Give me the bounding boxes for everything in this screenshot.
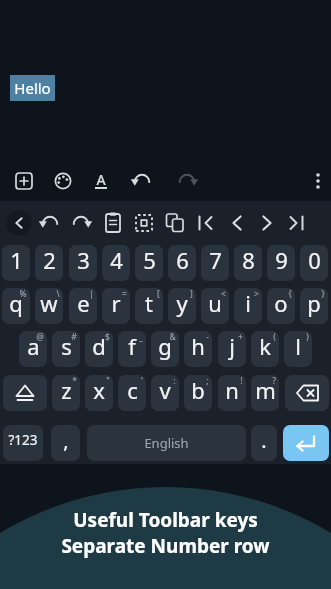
button[interactable]: , bbox=[51, 425, 80, 461]
staticText: $ bbox=[105, 331, 110, 343]
button[interactable]: 1 bbox=[2, 245, 30, 281]
button[interactable]: h bbox=[184, 331, 212, 367]
staticText: 4 bbox=[110, 245, 123, 275]
staticText: + bbox=[238, 331, 243, 343]
button[interactable]: t bbox=[135, 288, 163, 324]
button[interactable] bbox=[10, 167, 38, 195]
staticText: } bbox=[321, 288, 325, 300]
staticText: ( bbox=[273, 331, 276, 343]
staticText: [ bbox=[157, 288, 160, 300]
button[interactable]: b bbox=[184, 375, 212, 411]
staticText: @ bbox=[36, 331, 44, 343]
button[interactable]: 7 bbox=[201, 245, 229, 281]
button[interactable]: n bbox=[218, 375, 246, 411]
button[interactable] bbox=[304, 167, 331, 195]
staticText: b bbox=[191, 375, 205, 405]
button[interactable]: 9 bbox=[267, 245, 295, 281]
button[interactable]: d bbox=[85, 331, 113, 367]
button[interactable]: w bbox=[35, 288, 63, 324]
staticText: q bbox=[9, 288, 23, 318]
button[interactable]: m bbox=[251, 375, 279, 411]
button[interactable]: x bbox=[85, 375, 113, 411]
button[interactable]: f bbox=[118, 331, 146, 367]
button[interactable] bbox=[128, 167, 156, 195]
staticText: | bbox=[89, 288, 94, 300]
button[interactable]: c bbox=[118, 375, 146, 411]
button[interactable]: . bbox=[251, 425, 277, 461]
staticText: d bbox=[92, 331, 106, 361]
staticText: 5 bbox=[143, 245, 156, 275]
button[interactable]: y bbox=[168, 288, 196, 324]
button[interactable] bbox=[192, 209, 220, 237]
staticText: f bbox=[128, 331, 136, 361]
button[interactable]: 4 bbox=[102, 245, 130, 281]
staticText: % bbox=[19, 288, 27, 300]
button[interactable] bbox=[5, 209, 33, 237]
button[interactable]: 5 bbox=[135, 245, 163, 281]
button[interactable]: o bbox=[267, 288, 295, 324]
button[interactable]: p bbox=[300, 288, 328, 324]
button[interactable]: 2 bbox=[35, 245, 63, 281]
button[interactable]: 6 bbox=[168, 245, 196, 281]
staticText: : bbox=[173, 375, 176, 387]
staticText: u bbox=[208, 288, 222, 318]
staticText: y bbox=[176, 288, 188, 318]
button[interactable]: ?123 bbox=[3, 425, 43, 461]
staticText: ?123 bbox=[8, 431, 38, 449]
button[interactable] bbox=[130, 209, 158, 237]
staticText: w bbox=[40, 288, 58, 318]
button[interactable]: q bbox=[2, 288, 30, 324]
button[interactable]: j bbox=[218, 331, 246, 367]
staticText: 1 bbox=[10, 245, 23, 275]
staticText: ! bbox=[240, 375, 243, 387]
button[interactable]: v bbox=[151, 375, 179, 411]
button[interactable]: e bbox=[69, 288, 97, 324]
button[interactable]: 8 bbox=[234, 245, 262, 281]
button[interactable] bbox=[36, 209, 64, 237]
staticText: - bbox=[206, 331, 209, 343]
button[interactable]: u bbox=[201, 288, 229, 324]
staticText: l bbox=[295, 331, 301, 361]
button[interactable] bbox=[285, 375, 329, 411]
button[interactable]: g bbox=[151, 331, 179, 367]
button[interactable]: A bbox=[87, 167, 115, 195]
button[interactable]: r bbox=[102, 288, 130, 324]
button[interactable]: l bbox=[284, 331, 312, 367]
staticText: A bbox=[96, 170, 106, 189]
button[interactable]: 3 bbox=[69, 245, 97, 281]
staticText: English bbox=[144, 434, 189, 452]
staticText: 9 bbox=[275, 245, 288, 275]
button[interactable] bbox=[67, 209, 95, 237]
staticText: ? bbox=[272, 375, 276, 387]
staticText: 7 bbox=[209, 245, 222, 275]
staticText: Separate Number row bbox=[0, 533, 331, 559]
staticText: p bbox=[307, 288, 321, 318]
button[interactable]: English bbox=[87, 425, 246, 461]
button[interactable]: k bbox=[251, 331, 279, 367]
button[interactable] bbox=[161, 209, 189, 237]
button[interactable]: s bbox=[52, 331, 80, 367]
button[interactable] bbox=[283, 425, 329, 461]
button[interactable]: Hello bbox=[10, 75, 55, 101]
button[interactable] bbox=[99, 209, 127, 237]
button[interactable]: i bbox=[234, 288, 262, 324]
staticText: o bbox=[274, 288, 288, 318]
staticText: & bbox=[169, 331, 176, 343]
button[interactable] bbox=[173, 167, 201, 195]
button[interactable]: 0 bbox=[300, 245, 328, 281]
button[interactable] bbox=[253, 209, 281, 237]
staticText: e bbox=[77, 288, 90, 318]
staticText: * bbox=[72, 375, 77, 387]
staticText: Hello bbox=[14, 78, 51, 98]
button[interactable] bbox=[282, 209, 310, 237]
staticText: ) bbox=[306, 331, 309, 343]
staticText: ; bbox=[206, 375, 209, 387]
staticText: ] bbox=[190, 288, 193, 300]
button[interactable] bbox=[223, 209, 251, 237]
button[interactable] bbox=[3, 375, 47, 411]
button[interactable]: z bbox=[52, 375, 80, 411]
button[interactable]: a bbox=[19, 331, 47, 367]
button[interactable] bbox=[49, 167, 77, 195]
staticText: , bbox=[63, 427, 69, 454]
staticText: = bbox=[122, 288, 127, 300]
